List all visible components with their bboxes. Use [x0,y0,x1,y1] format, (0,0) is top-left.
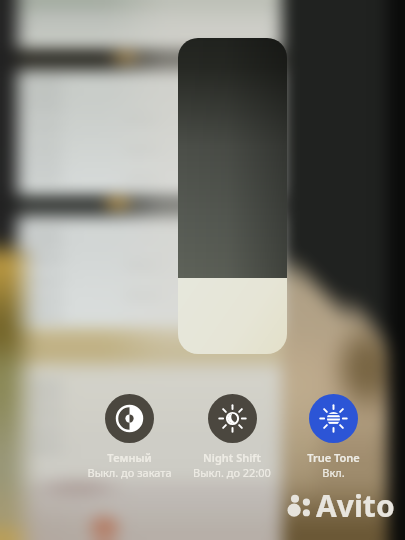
button[interactable]: Night Shift [177,394,287,480]
staticText: Night Shift [203,450,261,465]
staticText: Avito [316,485,395,526]
button[interactable]: Темный [74,394,184,480]
staticText: Вкл. [322,465,345,480]
button[interactable]: Brightness [178,38,287,354]
button[interactable]: True Tone [278,394,388,480]
staticText: Выкл. до заката [87,465,172,480]
staticText: Темный [107,450,152,465]
staticText: True Tone [307,450,360,465]
staticText: Выкл. до 22:00 [193,465,271,480]
